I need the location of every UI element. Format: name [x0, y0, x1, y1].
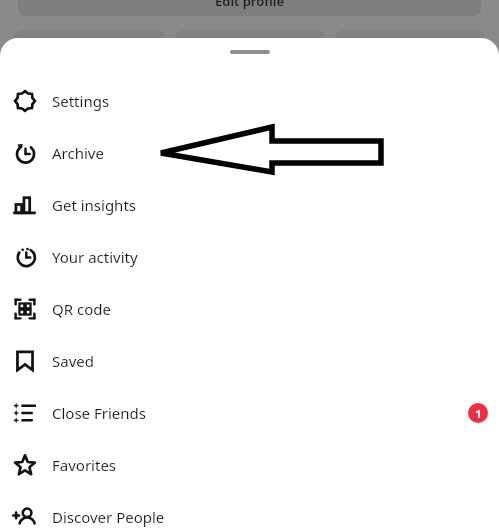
button[interactable]: Edit profile — [18, 0, 481, 16]
button[interactable]: Saved — [0, 335, 499, 387]
button[interactable] — [335, 30, 485, 60]
staticText: Favorites — [52, 455, 117, 475]
staticText: Close Friends — [52, 403, 146, 423]
staticText: Edit profile — [215, 0, 285, 10]
button[interactable]: Settings — [0, 75, 499, 127]
staticText: Get insights — [52, 195, 136, 215]
staticText: 1 — [475, 406, 482, 421]
staticText: QR code — [52, 299, 111, 319]
button[interactable] — [14, 30, 165, 60]
staticText: Archive — [52, 143, 104, 163]
button[interactable]: Close Friends — [0, 387, 499, 439]
staticText: Discover People — [52, 507, 165, 527]
button[interactable]: Discover People — [0, 491, 499, 531]
staticText: Your activity — [52, 247, 138, 267]
button[interactable]: Favorites — [0, 439, 499, 491]
button[interactable]: QR code — [0, 283, 499, 335]
button[interactable]: Your activity — [0, 231, 499, 283]
button[interactable] — [175, 30, 325, 60]
button[interactable]: Archive — [0, 127, 499, 179]
staticText: Saved — [52, 351, 94, 371]
staticText: Settings — [52, 91, 110, 111]
button[interactable]: Get insights — [0, 179, 499, 231]
